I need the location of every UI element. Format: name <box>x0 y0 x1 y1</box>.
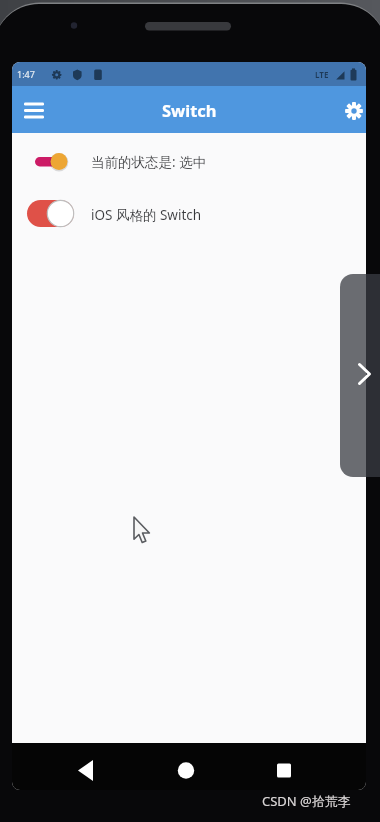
staticText: CSDN @拾荒李 <box>262 792 351 810</box>
staticText: Switch <box>162 99 217 121</box>
button[interactable] <box>266 753 302 789</box>
button[interactable] <box>30 147 70 177</box>
staticText: iOS 风格的 Switch <box>91 206 202 224</box>
button[interactable] <box>340 274 380 477</box>
button[interactable] <box>12 86 58 133</box>
button[interactable] <box>68 753 104 789</box>
button[interactable] <box>25 198 78 232</box>
button[interactable] <box>168 753 204 789</box>
staticText: 当前的状态是: 选中 <box>91 153 207 171</box>
staticText: LTE <box>315 69 329 80</box>
staticText: 1:47 <box>17 68 35 80</box>
button[interactable] <box>332 86 366 133</box>
